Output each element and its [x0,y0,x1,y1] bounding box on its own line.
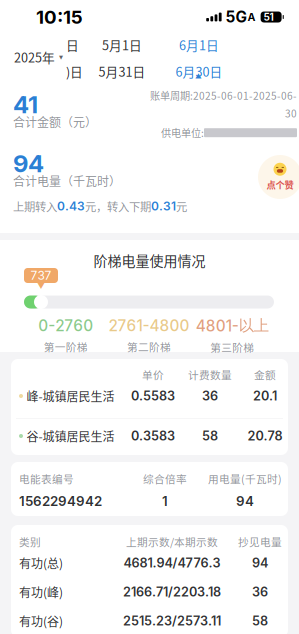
staticText: 5G [226,8,248,26]
staticText: ▼ [37,281,45,291]
staticText: 5月1日 [102,36,142,54]
staticText: 单价 [142,367,164,382]
staticText: 日 [66,36,79,54]
staticText: ▲ [195,72,202,80]
staticText: 上期示数/本期示数 [126,534,218,549]
staticText: 2166.71/2203.18 [123,584,221,600]
staticText: 36 [202,388,218,404]
staticText: 合计金额（元） [13,113,97,130]
staticText: 6月1日 [179,36,219,54]
staticText: 上期转入 [13,198,57,214]
staticText: 阶梯电量使用情况 [93,250,205,270]
staticText: 有功(总) [19,554,63,572]
staticText: 20.78 [247,428,282,444]
staticText: 电能表编号 [19,471,74,486]
staticText: 4801-以上 [196,316,269,335]
staticText: 抄见电量 [238,534,282,549]
staticText: 0.3583 [131,428,175,444]
staticText: 供电单位: [161,125,204,140]
staticText: 2025年 [14,48,55,66]
staticText: 元 [176,198,187,214]
staticText: 第一阶梯 [44,339,88,354]
staticText: 第二阶梯 [127,339,171,354]
button[interactable]: 5月1日 [98,38,146,78]
staticText: 20.1 [253,388,277,404]
staticText: 30 [285,106,297,120]
staticText: 58 [252,613,268,629]
staticText: 1 [162,493,168,509]
staticText: ▾ [59,52,63,62]
staticText: 0-2760 [38,316,93,335]
staticText: 元，转入下期 [85,198,151,214]
staticText: 谷-城镇居民生活 [26,427,114,445]
staticText: 737 [30,268,51,283]
staticText: 5月31日 [98,62,145,80]
staticText: )日 [66,62,83,80]
staticText: 用电量(千瓦时) [208,471,282,486]
staticText: 2761-4800 [108,316,189,335]
staticText: 0.31 [151,199,176,213]
staticText: 有功(峰) [19,583,63,601]
staticText: 94 [236,493,254,509]
staticText: 36 [252,584,268,600]
button[interactable]: 点个赞 [258,155,299,199]
staticText: 2515.23/2573.11 [123,613,221,629]
staticText: 类别 [19,534,41,549]
staticText: 账单周期:2025-06-01-2025-06- [150,88,297,103]
staticText: 峰-城镇居民生活 [26,387,114,405]
staticText: 94 [252,555,268,571]
staticText: 51 [264,11,274,23]
staticText: 计费数量 [188,367,232,382]
staticText: 41 [13,90,38,119]
staticText: 有功(谷) [19,612,63,630]
button[interactable]: 2025年 [14,42,60,72]
staticText: A [248,10,256,23]
staticText: 1562294942 [19,493,102,509]
button[interactable]: 日 [66,38,88,78]
staticText: 点个赞 [266,178,293,191]
staticText: 综合倍率 [143,471,187,486]
staticText: 合计电量（千瓦时） [13,172,121,189]
staticText: 0.5583 [131,388,175,404]
staticText: 金额 [254,367,276,382]
staticText: 0.43 [57,199,85,213]
staticText: 4681.94/4776.3 [123,555,220,571]
staticText: 6月30日 [175,62,222,80]
staticText: 58 [202,428,218,444]
staticText: 第三阶梯 [210,339,254,355]
button[interactable]: 6月1日 [175,38,223,78]
staticText: 94 [13,149,44,178]
staticText: 10:15 [36,6,83,28]
